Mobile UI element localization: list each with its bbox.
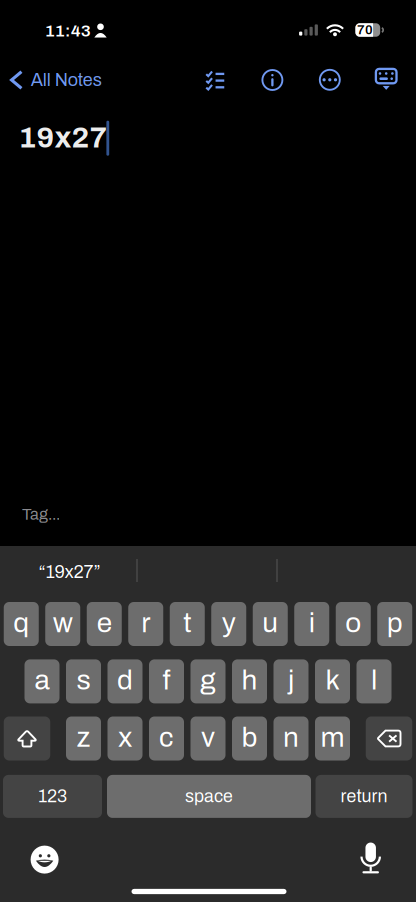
staticText: i <box>309 608 315 638</box>
button[interactable]: Info <box>252 59 293 100</box>
staticText: f <box>162 665 170 695</box>
staticText: Tag... <box>22 506 60 523</box>
button[interactable]: More <box>309 59 350 100</box>
staticText: m <box>320 722 344 753</box>
staticText: b <box>241 722 257 753</box>
button[interactable]: b <box>232 716 267 760</box>
staticText: 11:43 <box>45 21 91 40</box>
button[interactable]: return <box>315 775 412 818</box>
staticText: k <box>325 665 339 695</box>
staticText: c <box>159 722 174 753</box>
button[interactable]: Checklist <box>195 60 235 99</box>
staticText: n <box>283 722 299 753</box>
button[interactable]: d <box>107 659 142 703</box>
staticText: o <box>345 608 361 638</box>
button[interactable]: Delete <box>366 716 412 760</box>
button[interactable]: v <box>190 716 225 760</box>
staticText: t <box>183 608 191 638</box>
button[interactable]: x <box>107 716 142 760</box>
button[interactable]: o <box>336 602 371 646</box>
button[interactable]: e <box>87 602 122 646</box>
button[interactable]: i <box>294 602 329 646</box>
button[interactable]: Hide Keyboard <box>365 59 407 101</box>
button[interactable]: j <box>273 659 308 703</box>
staticText: r <box>141 608 150 638</box>
button[interactable]: space <box>107 775 311 818</box>
button[interactable]: n <box>273 716 308 760</box>
button[interactable]: g <box>190 659 225 703</box>
button[interactable]: f <box>149 659 184 703</box>
staticText: s <box>76 665 90 695</box>
button[interactable]: k <box>315 659 350 703</box>
button[interactable]: p <box>377 602 412 646</box>
staticText: return <box>340 787 387 806</box>
staticText: d <box>117 665 133 695</box>
button[interactable]: c <box>149 716 184 760</box>
staticText: 19x27 <box>19 121 108 154</box>
staticText: a <box>34 665 49 695</box>
button[interactable]: y <box>211 602 246 646</box>
staticText: 123 <box>38 787 67 806</box>
staticText: u <box>262 608 278 638</box>
staticText: l <box>371 665 377 695</box>
staticText: w <box>53 608 73 638</box>
button[interactable]: s <box>66 659 101 703</box>
button[interactable]: q <box>4 602 39 646</box>
button[interactable]: w <box>45 602 80 646</box>
button[interactable]: a <box>24 659 59 703</box>
staticText: p <box>387 608 403 638</box>
staticText: All Notes <box>31 70 102 90</box>
staticText: 70 <box>357 22 373 37</box>
button[interactable]: Shift <box>4 716 50 760</box>
staticText: space <box>185 787 233 806</box>
staticText: “19x27” <box>38 562 100 582</box>
staticText: v <box>201 722 215 753</box>
staticText: y <box>222 608 236 638</box>
button[interactable]: r <box>128 602 163 646</box>
staticText: z <box>76 722 90 753</box>
staticText: j <box>288 665 294 695</box>
button[interactable]: All Notes <box>2 61 110 99</box>
staticText: q <box>13 608 29 638</box>
button[interactable]: Emoji <box>20 835 70 885</box>
staticText: h <box>241 665 257 695</box>
button[interactable]: Dictation <box>349 831 393 885</box>
button[interactable]: 123 <box>3 775 102 818</box>
button[interactable]: t <box>170 602 205 646</box>
button[interactable]: u <box>253 602 288 646</box>
staticText: e <box>97 608 112 638</box>
button[interactable]: “19x27” <box>1 547 138 597</box>
button[interactable]: h <box>232 659 267 703</box>
button[interactable]: l <box>356 659 391 703</box>
button[interactable]: m <box>315 716 350 760</box>
staticText: x <box>118 722 132 753</box>
button[interactable]: z <box>66 716 101 760</box>
staticText: g <box>200 665 216 695</box>
